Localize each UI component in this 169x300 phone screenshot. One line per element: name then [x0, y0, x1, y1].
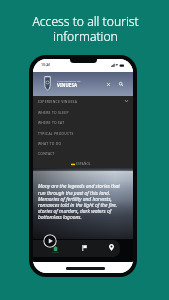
staticText: EXPERIENCE VINUESA	[38, 99, 78, 103]
button[interactable]: WHAT TO DO	[33, 138, 133, 148]
staticText: AYUNTAMIENTO DE	[57, 80, 81, 83]
staticText: VINUESA	[57, 82, 78, 88]
button[interactable]: EXPERIENCE VINUESA	[33, 96, 133, 106]
button[interactable]: Map	[104, 240, 118, 254]
button[interactable]: WHERE TO SLEEP	[33, 107, 133, 117]
staticText: ESPAÑOL	[75, 162, 91, 166]
button[interactable]: AYUNTAMIENTO DE	[33, 72, 133, 96]
button[interactable]: ESPAÑOL	[71, 162, 91, 166]
button[interactable]: Search	[115, 78, 127, 90]
button[interactable]: Close	[102, 78, 114, 90]
staticText: CONTACT	[38, 151, 55, 155]
staticText: WHAT TO DO	[38, 141, 62, 145]
button[interactable]: Routes	[77, 241, 91, 255]
staticText: 10:21	[41, 62, 51, 67]
button[interactable]: Play audio guide	[43, 234, 57, 248]
staticText: Many are the legends and stories that ru…	[38, 183, 120, 220]
staticText: INICIO	[52, 251, 59, 254]
button[interactable]: Home	[49, 241, 63, 255]
button[interactable]: CONTACT	[33, 148, 133, 158]
staticText: WHERE TO EAT	[38, 120, 65, 124]
staticText: TYPICAL PRODUCTS	[38, 131, 74, 135]
button[interactable]: WHERE TO EAT	[33, 117, 133, 127]
staticText: Access to all tourist information	[1, 13, 169, 44]
staticText: WHERE TO SLEEP	[38, 110, 69, 114]
button[interactable]: TYPICAL PRODUCTS	[33, 128, 133, 138]
